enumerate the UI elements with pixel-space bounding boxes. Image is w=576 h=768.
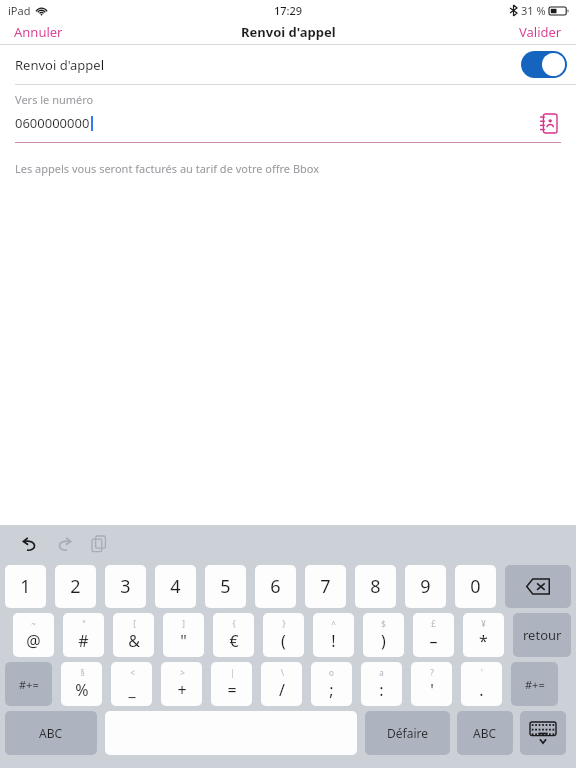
button[interactable]: 9 <box>405 565 446 608</box>
button[interactable]: Annuler la frappe <box>14 529 44 559</box>
staticText: _ <box>128 679 136 701</box>
staticText: / <box>279 679 285 701</box>
staticText: #+= <box>525 677 545 692</box>
button[interactable]: 1 <box>5 565 46 608</box>
button[interactable]: Rétablir la frappe <box>49 529 79 559</box>
staticText: ? <box>430 667 434 678</box>
staticText: : <box>379 679 384 701</box>
button[interactable]: \ <box>261 662 302 706</box>
staticText: Valider <box>519 23 562 41</box>
staticText: § <box>80 667 85 678</box>
staticText: % <box>75 679 89 701</box>
staticText: € <box>229 630 239 652</box>
staticText: 3 <box>120 574 131 599</box>
button[interactable]: § <box>61 662 102 706</box>
staticText: 5 <box>220 574 231 599</box>
staticText: 7 <box>320 574 331 599</box>
button[interactable]: Défaire <box>365 711 450 755</box>
staticText: 31 % <box>521 3 546 18</box>
staticText: ! <box>331 630 336 652</box>
button[interactable]: ^ <box>313 613 354 657</box>
button[interactable]: ABC <box>457 711 513 755</box>
staticText: \ <box>281 667 284 678</box>
staticText: | <box>230 667 235 678</box>
button[interactable]: 8 <box>355 565 396 608</box>
button[interactable]: < <box>111 662 152 706</box>
staticText: retour <box>523 626 562 644</box>
button[interactable]: a <box>361 662 402 706</box>
button[interactable]: o <box>311 662 352 706</box>
button[interactable]: ' <box>461 662 502 706</box>
staticText: Défaire <box>387 725 428 741</box>
button[interactable]: £ <box>413 613 454 657</box>
button[interactable]: $ <box>363 613 404 657</box>
staticText: $ <box>381 618 386 629</box>
button[interactable]: 3 <box>105 565 146 608</box>
button[interactable]: [ <box>113 613 154 657</box>
staticText: ; <box>329 679 334 701</box>
button[interactable]: Choisir un contact <box>535 110 561 136</box>
button[interactable]: Annuler <box>0 21 73 43</box>
staticText: { <box>232 618 236 629</box>
button[interactable]: 7 <box>305 565 346 608</box>
staticText: Renvoi d'appel <box>15 56 105 74</box>
staticText: o <box>329 667 334 678</box>
staticText: 4 <box>170 574 181 599</box>
staticText: a <box>379 667 384 678</box>
staticText: ABC <box>473 725 497 741</box>
staticText: + <box>177 679 187 701</box>
staticText: – <box>429 630 438 652</box>
button[interactable]: Supprimer <box>505 565 571 608</box>
button[interactable]: ABC <box>5 711 97 755</box>
button[interactable]: Renvoi d'appel activé <box>521 51 567 78</box>
staticText: @ <box>26 630 41 652</box>
staticText: } <box>282 618 286 629</box>
staticText: ( <box>281 630 286 652</box>
staticText: Annuler <box>14 23 63 41</box>
staticText: ) <box>381 630 386 652</box>
staticText: #+= <box>19 677 39 692</box>
staticText: [ <box>133 618 136 629</box>
staticText: 9 <box>420 574 431 599</box>
staticText: = <box>227 679 237 701</box>
staticText: > <box>180 667 185 678</box>
staticText: * <box>479 630 488 652</box>
staticText: . <box>479 679 484 701</box>
button[interactable]: Coller <box>84 529 114 559</box>
staticText: < <box>130 667 135 678</box>
button[interactable]: retour <box>513 613 571 657</box>
staticText: ¥ <box>481 618 486 629</box>
button[interactable]: } <box>263 613 304 657</box>
button[interactable]: 5 <box>205 565 246 608</box>
button[interactable]: 2 <box>55 565 96 608</box>
staticText: # <box>78 630 89 652</box>
button[interactable]: #+= <box>511 662 558 706</box>
staticText: 1 <box>20 574 31 599</box>
staticText: ] <box>182 618 185 629</box>
button[interactable]: > <box>161 662 202 706</box>
staticText: £ <box>431 618 436 629</box>
staticText: ° <box>82 618 86 629</box>
staticText: ^ <box>331 618 336 629</box>
button[interactable]: ~ <box>13 613 54 657</box>
button[interactable]: ? <box>411 662 452 706</box>
button[interactable]: ] <box>163 613 204 657</box>
staticText: ' <box>430 679 434 701</box>
staticText: & <box>128 630 140 652</box>
staticText: 8 <box>370 574 381 599</box>
button[interactable]: { <box>213 613 254 657</box>
button[interactable]: ¥ <box>463 613 504 657</box>
button[interactable]: Valider <box>509 21 576 43</box>
button[interactable]: Masquer le clavier <box>520 711 566 755</box>
button[interactable]: Renvoi d'appel <box>0 45 576 84</box>
button[interactable]: 0 <box>455 565 496 608</box>
button[interactable]: 6 <box>255 565 296 608</box>
staticText: 2 <box>70 574 81 599</box>
button[interactable]: 4 <box>155 565 196 608</box>
staticText: Les appels vous seront facturés au tarif… <box>15 161 320 176</box>
button[interactable]: ° <box>63 613 104 657</box>
staticText: 0 <box>470 574 481 599</box>
button[interactable]: #+= <box>5 662 52 706</box>
button[interactable]: | <box>211 662 252 706</box>
